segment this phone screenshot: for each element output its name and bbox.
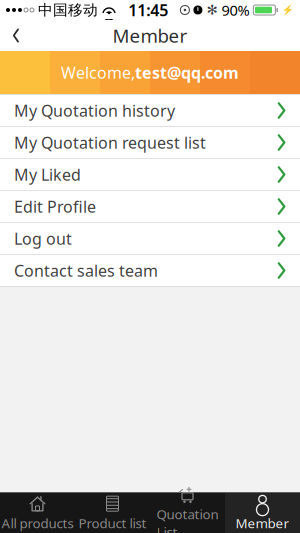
button[interactable]: All products (0, 493, 75, 533)
staticText: ✻ (206, 2, 217, 17)
staticText: Member (235, 514, 289, 532)
staticText: 中国移动 (38, 1, 98, 19)
staticText: Product list (78, 514, 146, 532)
button[interactable]: Contact sales team (0, 255, 300, 287)
staticText: 90% (221, 0, 249, 20)
staticText: My Liked (14, 164, 81, 185)
staticText: test@qq.com (135, 62, 239, 83)
button[interactable]: My Quotation history (0, 95, 300, 127)
staticText: Welcome, (61, 62, 135, 83)
button[interactable]: Member (225, 493, 300, 533)
button[interactable]: Back (0, 20, 36, 51)
staticText: My Quotation history (14, 100, 175, 121)
staticText: All products (1, 514, 73, 532)
staticText: Log out (14, 228, 72, 249)
button[interactable]: Log out (0, 223, 300, 255)
staticText: My Quotation request list (14, 132, 206, 153)
staticText: Member (112, 23, 187, 48)
staticText: Contact sales team (14, 260, 158, 281)
staticText: Edit Profile (14, 196, 96, 217)
button[interactable]: My Liked (0, 159, 300, 191)
button[interactable]: Quotation List (150, 493, 225, 533)
staticText: ⚡ (282, 5, 294, 15)
button[interactable]: My Quotation request list (0, 127, 300, 159)
staticText: Quotation List (156, 505, 218, 533)
staticText: 11:45 (128, 0, 168, 21)
button[interactable]: Edit Profile (0, 191, 300, 223)
button[interactable]: Product list (75, 493, 150, 533)
